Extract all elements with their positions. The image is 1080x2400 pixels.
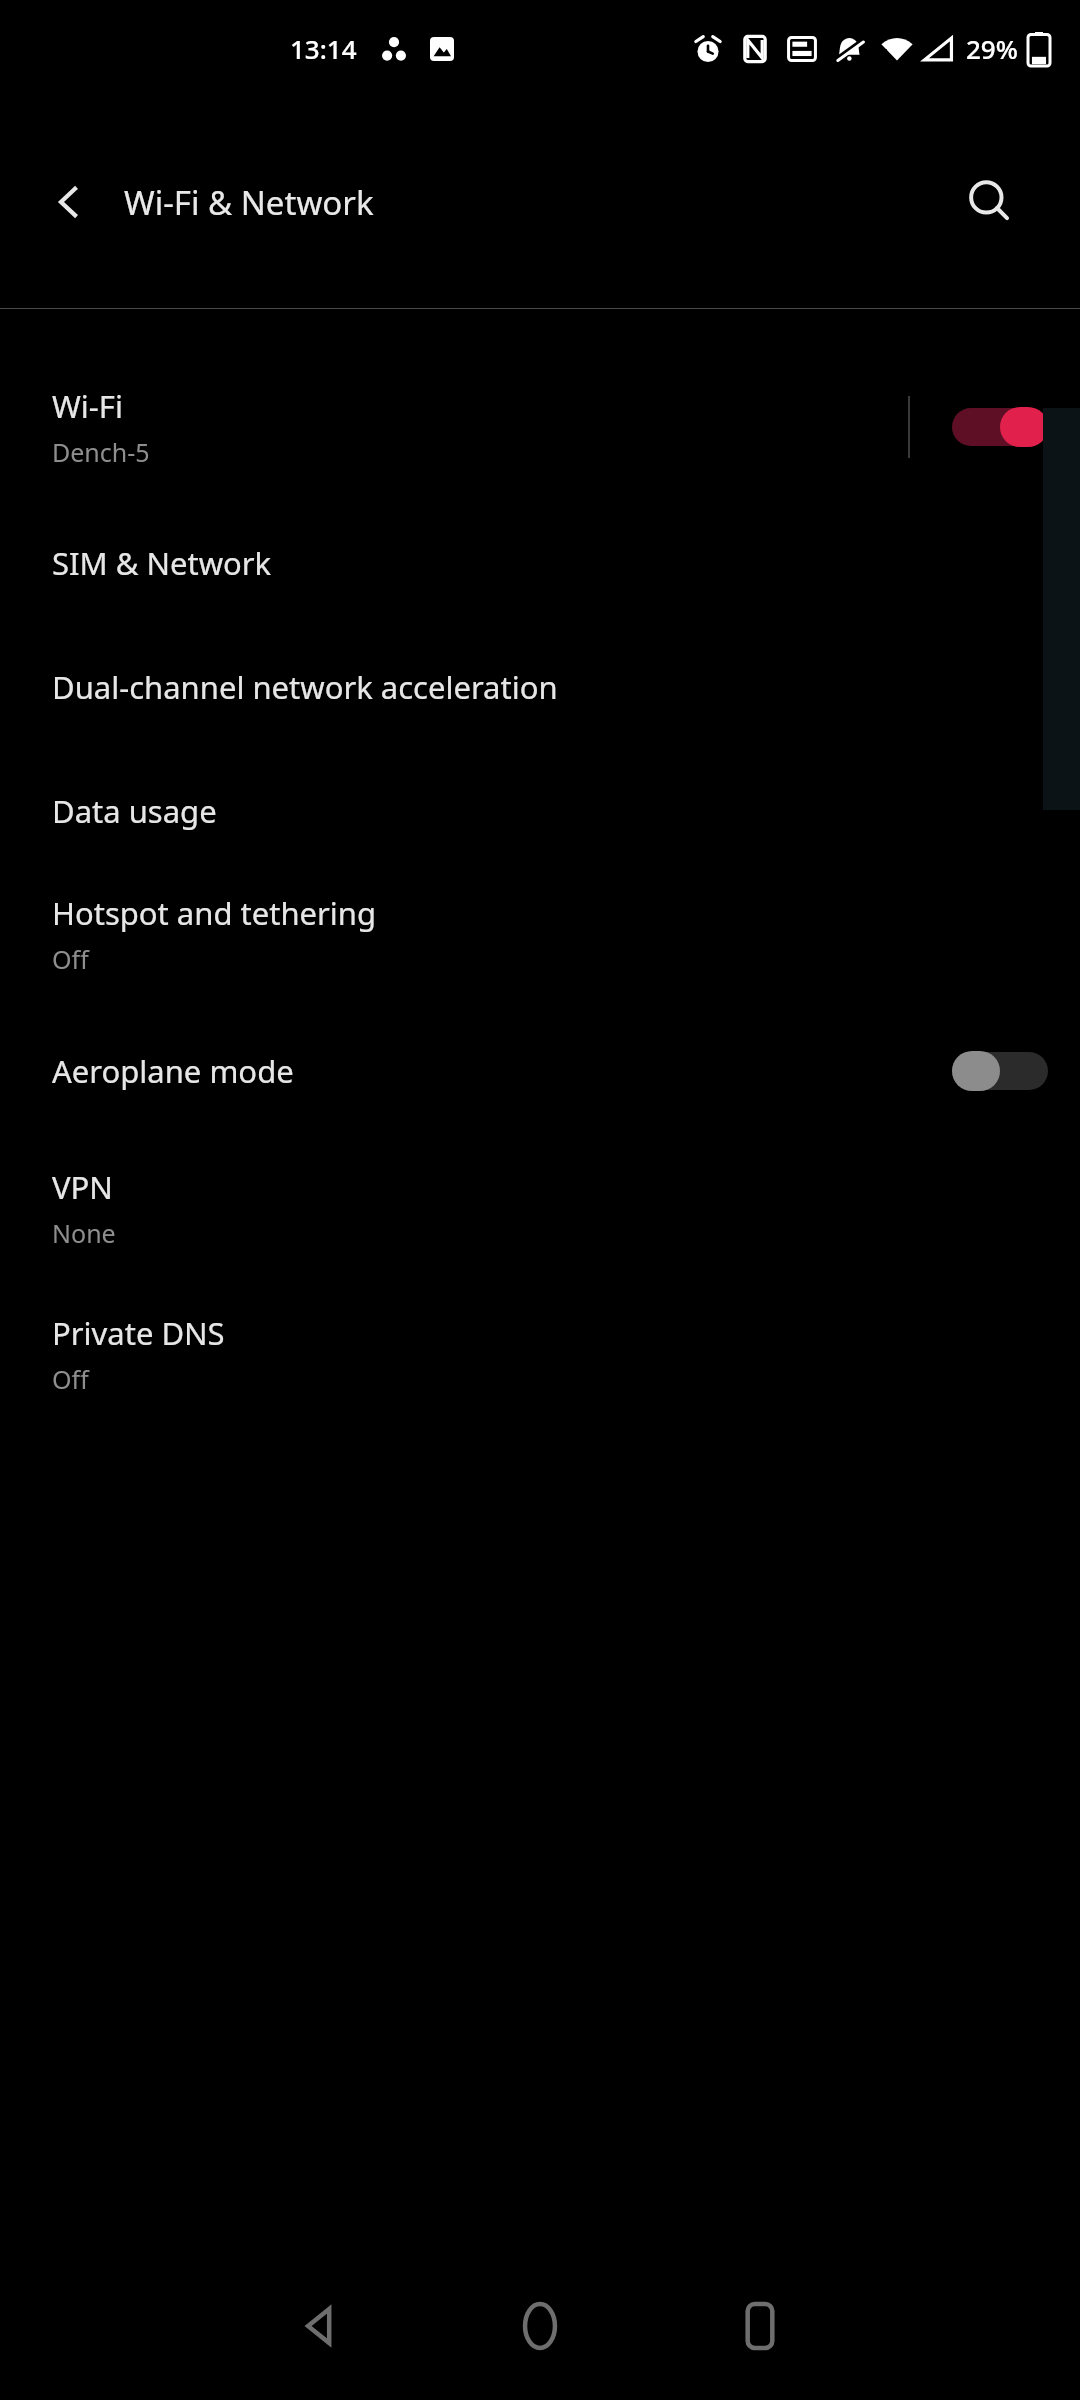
button[interactable]: Aeroplane mode toggle [948, 1043, 1052, 1099]
staticText: SIM & Network [52, 542, 272, 584]
staticText: Data usage [52, 790, 217, 832]
staticText: Hotspot and tethering [52, 892, 377, 934]
button[interactable]: Aeroplane mode [0, 1021, 1080, 1121]
button[interactable]: VPN [0, 1149, 1080, 1267]
button[interactable]: Back [20, 154, 116, 250]
staticText: Dench-5 [52, 435, 150, 469]
staticText: Wi-Fi & Network [124, 180, 374, 225]
staticText: Off [52, 1362, 89, 1396]
button[interactable]: Wi-Fi [0, 357, 1080, 497]
button[interactable]: Wi-Fi toggle [948, 399, 1052, 455]
button[interactable]: Data usage [0, 775, 1080, 847]
staticText: VPN [52, 1166, 113, 1208]
button[interactable]: Search [940, 152, 1040, 252]
button[interactable]: Hotspot and tethering [0, 875, 1080, 993]
staticText: 13:14 [290, 31, 357, 66]
staticText: Wi-Fi [52, 385, 123, 427]
button[interactable]: Back [262, 2268, 378, 2384]
staticText: Aeroplane mode [52, 1050, 294, 1092]
staticText: Dual-channel network acceleration [52, 666, 558, 708]
staticText: None [52, 1216, 116, 1250]
button[interactable]: Recent apps [702, 2268, 818, 2384]
staticText: Off [52, 942, 89, 976]
button[interactable]: Dual-channel network acceleration [0, 651, 1080, 723]
button[interactable]: Private DNS [0, 1295, 1080, 1413]
button[interactable]: Home [482, 2268, 598, 2384]
button[interactable]: SIM & Network [0, 527, 1080, 599]
staticText: 29% [966, 31, 1018, 66]
staticText: Private DNS [52, 1312, 225, 1354]
